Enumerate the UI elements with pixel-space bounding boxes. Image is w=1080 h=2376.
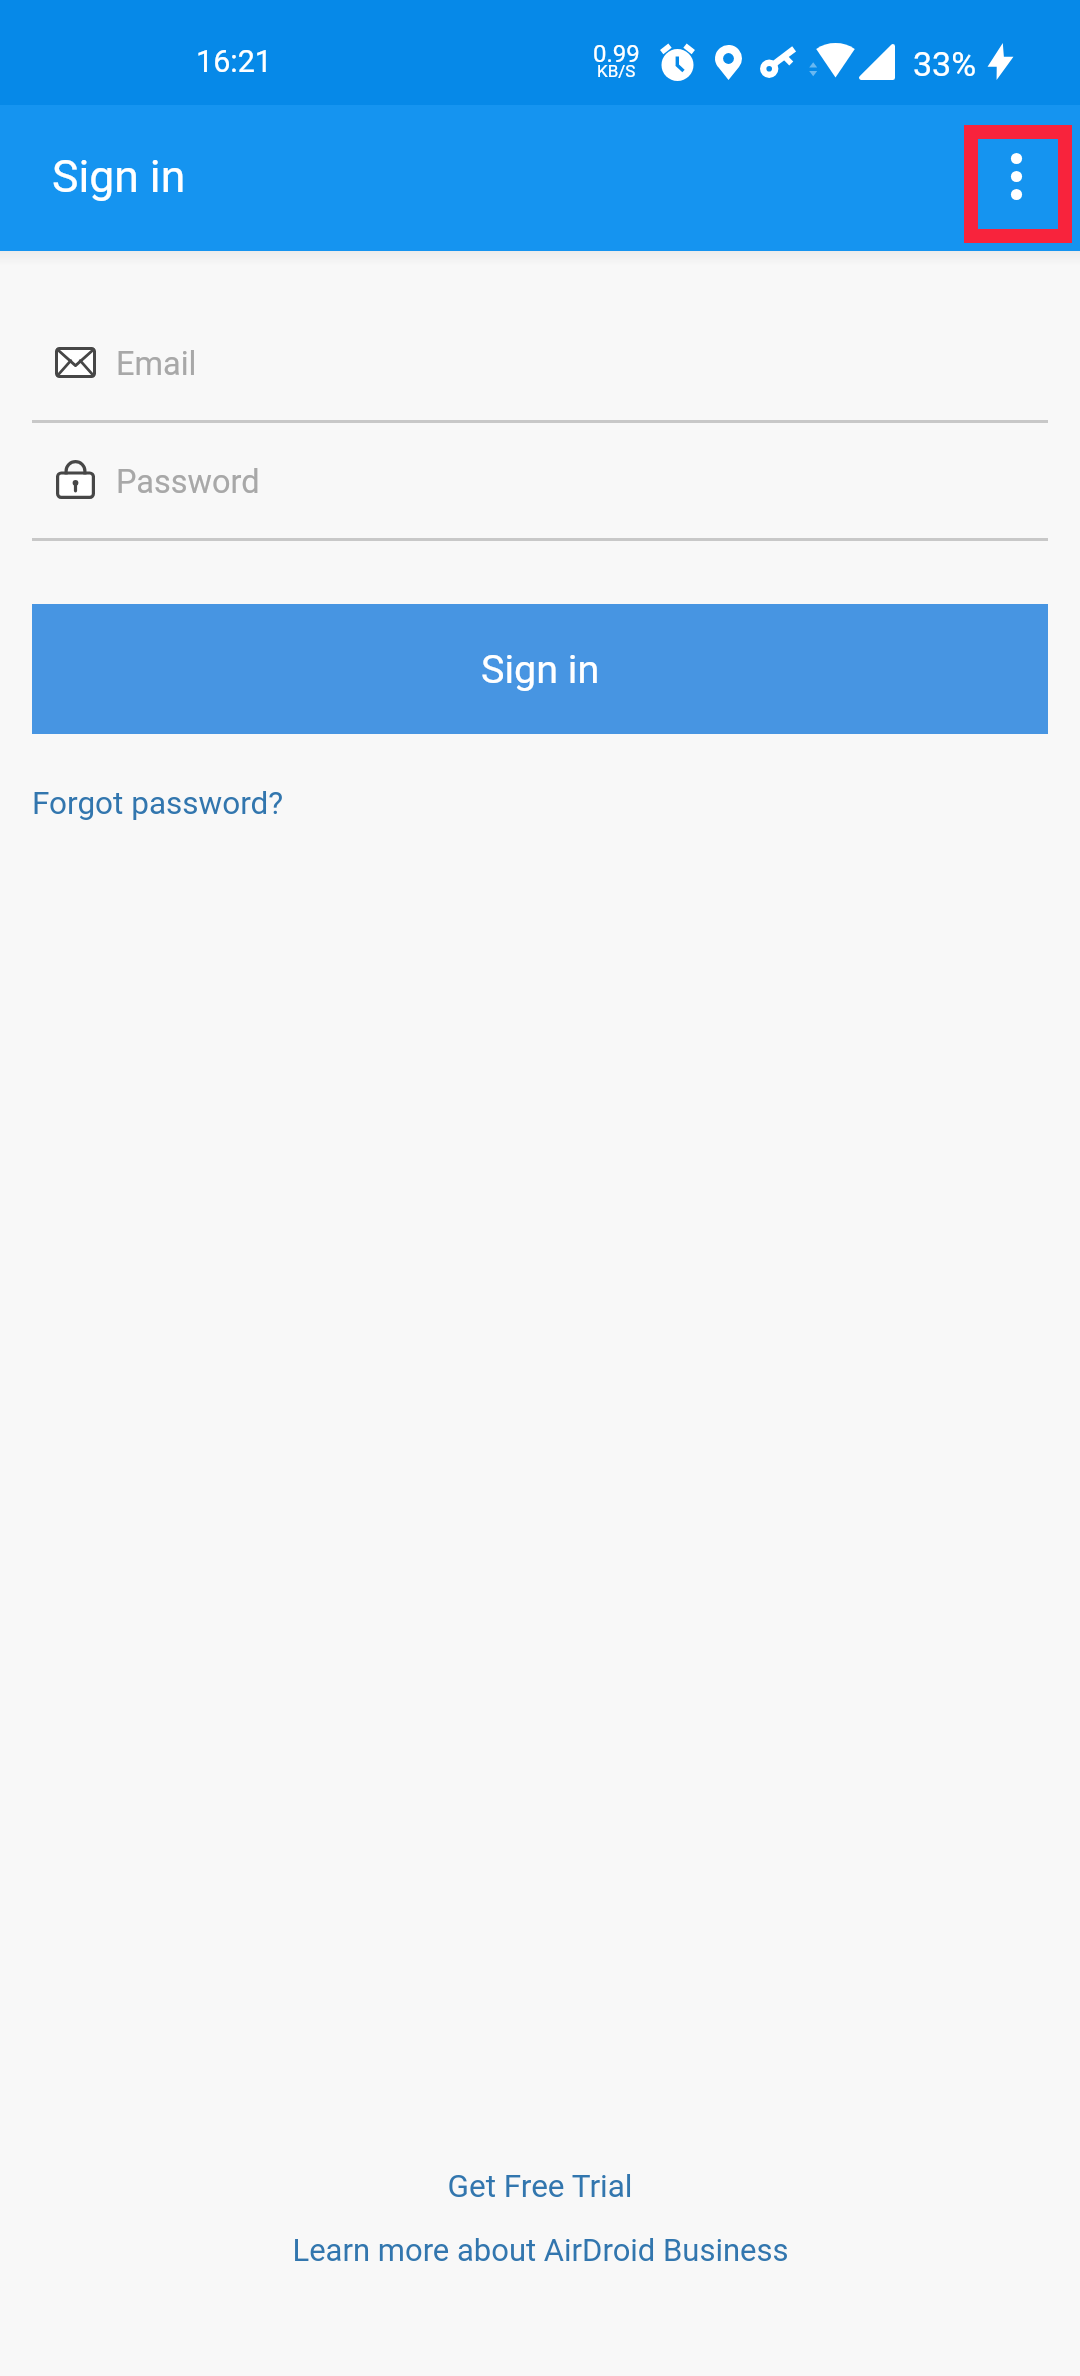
staticText: Sign in	[52, 151, 186, 203]
staticText: Learn more about AirDroid Business	[292, 2232, 789, 2268]
button[interactable]: Get Free Trial	[423, 2160, 657, 2213]
button[interactable]: Sign in	[32, 604, 1048, 734]
button[interactable]: Password	[0, 422, 1080, 540]
button[interactable]: More options	[964, 125, 1072, 243]
button[interactable]: Forgot password?	[31, 775, 285, 832]
staticText: Forgot password?	[32, 785, 284, 822]
button[interactable]: Email	[0, 303, 1080, 421]
staticText: 16:21	[196, 44, 272, 80]
staticText: KB/S	[597, 61, 636, 81]
staticText: Password	[116, 463, 260, 501]
staticText: 33%	[913, 44, 977, 84]
staticText: Email	[116, 345, 197, 383]
staticText: Sign in	[481, 646, 600, 692]
button[interactable]: Learn more about AirDroid Business	[268, 2224, 813, 2276]
staticText: Get Free Trial	[447, 2168, 633, 2205]
staticText: 0.99	[593, 40, 640, 68]
